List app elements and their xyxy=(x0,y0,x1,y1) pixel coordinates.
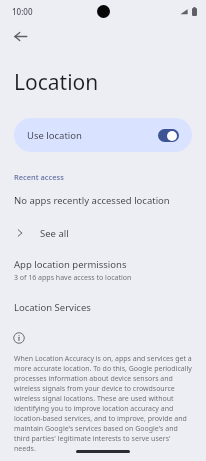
staticText: App location permissions xyxy=(14,258,127,271)
staticText: 10:00 xyxy=(12,6,33,17)
staticText: Location xyxy=(14,68,99,97)
staticText: No apps recently accessed location xyxy=(14,194,170,207)
button[interactable]: See all xyxy=(0,221,206,245)
staticText: See all xyxy=(40,227,69,240)
button[interactable]: App location permissions xyxy=(0,258,206,283)
button[interactable]: Back xyxy=(6,22,34,50)
staticText: When Location Accuracy is on, apps and s… xyxy=(14,354,193,454)
button[interactable]: Use location toggle xyxy=(158,129,179,142)
staticText: Use location xyxy=(27,129,82,142)
button[interactable]: Location Services xyxy=(0,301,91,314)
button[interactable]: Use location xyxy=(14,118,192,152)
staticText: Recent access xyxy=(14,172,64,182)
staticText: 3 of 16 apps have access to location xyxy=(14,273,132,283)
